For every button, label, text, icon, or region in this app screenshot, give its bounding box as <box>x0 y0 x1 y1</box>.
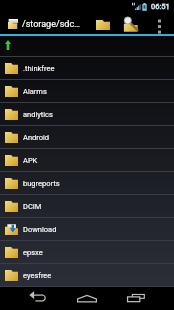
staticText: DCIM <box>23 202 42 211</box>
staticText: andlytics <box>23 110 53 119</box>
staticText: /storage/sdc… <box>22 19 81 30</box>
button[interactable]: New folder <box>92 13 114 36</box>
button[interactable]: Back <box>16 287 59 309</box>
button[interactable]: More options <box>150 13 168 36</box>
staticText: Download <box>23 225 57 234</box>
button[interactable]: Search <box>119 13 142 36</box>
staticText: epsxe <box>23 248 43 257</box>
button[interactable]: Alarms <box>0 80 174 103</box>
button[interactable]: Recents <box>114 287 157 309</box>
staticText: Android <box>23 133 50 142</box>
staticText: Alarms <box>23 87 47 96</box>
button[interactable]: Android <box>0 126 174 149</box>
staticText: bugreports <box>23 179 60 188</box>
button[interactable]: andlytics <box>0 103 174 126</box>
staticText: eyesfree <box>23 271 52 280</box>
button[interactable]: Up one level <box>0 36 174 57</box>
button[interactable]: eyesfree <box>0 264 174 287</box>
button[interactable]: APK <box>0 149 174 172</box>
button[interactable]: epsxe <box>0 241 174 264</box>
button[interactable]: .thinkfree <box>0 57 174 80</box>
staticText: 06:51 <box>151 2 170 11</box>
button[interactable]: bugreports <box>0 172 174 195</box>
button[interactable]: Home <box>65 287 109 309</box>
staticText: .thinkfree <box>23 64 55 73</box>
button[interactable]: DCIM <box>0 195 174 218</box>
button[interactable]: Download <box>0 218 174 241</box>
staticText: APK <box>23 156 38 165</box>
